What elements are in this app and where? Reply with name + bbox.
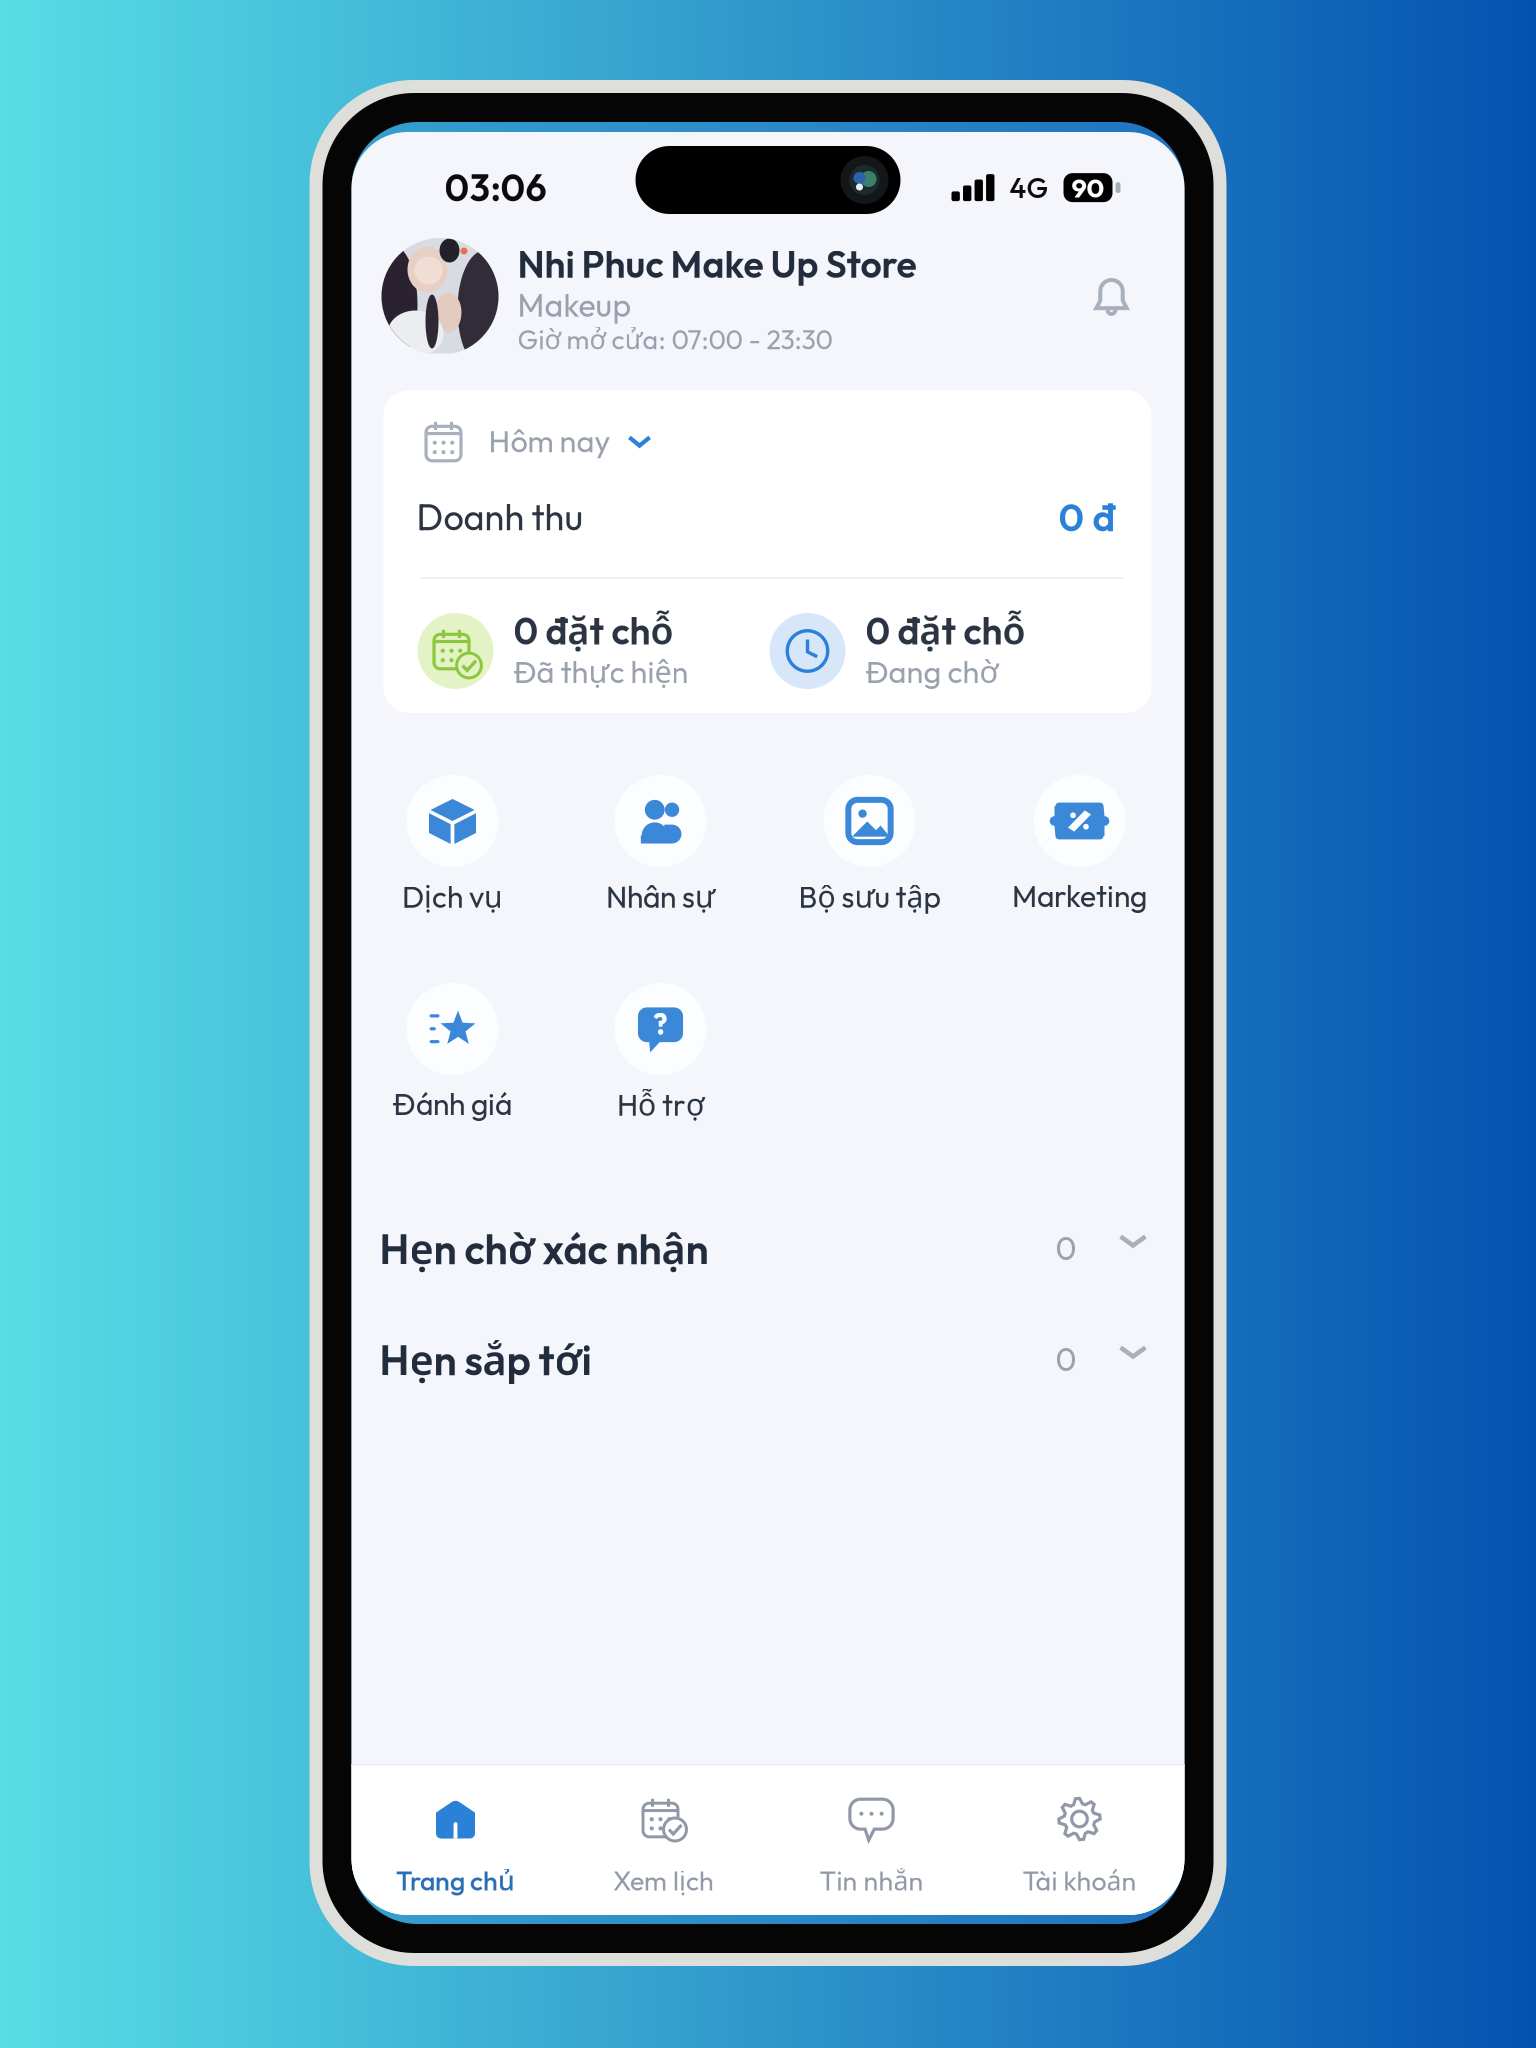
button[interactable]: Marketing [975, 775, 1183, 935]
button[interactable]: Bộ sưu tập [765, 775, 973, 935]
staticText: Giờ mở cửa: 07:00 - 23:30 [517, 321, 832, 357]
button[interactable]: Xem lịch [559, 1764, 767, 1915]
staticText: Đã thực hiện [513, 650, 688, 692]
button[interactable]: Tài khoản [975, 1764, 1183, 1915]
staticText: 0 đặt chỗ [865, 605, 1025, 655]
staticText: Nhi Phuc Make Up Store [517, 240, 916, 287]
staticText: Bộ sưu tập [798, 876, 940, 916]
staticText: Makeup [517, 285, 631, 325]
staticText: 0 [1055, 1339, 1076, 1379]
staticText: ? [653, 1005, 668, 1042]
button[interactable]: Dịch vụ [348, 775, 556, 935]
staticText: Dịch vụ [402, 876, 503, 916]
staticText: Tin nhắn [819, 1862, 923, 1898]
button[interactable]: Đánh giá [348, 983, 556, 1143]
staticText: Hỗ trợ [617, 1084, 704, 1124]
staticText: Marketing [1012, 877, 1147, 915]
staticText: Hôm nay [488, 422, 610, 460]
staticText: Đánh giá [393, 1085, 512, 1123]
staticText: 90 [1071, 171, 1104, 204]
staticText: Xem lịch [613, 1862, 714, 1898]
staticText: Doanh thu [416, 494, 583, 540]
button[interactable]: Trang chủ [351, 1764, 559, 1915]
staticText: 0 đặt chỗ [513, 605, 673, 655]
button[interactable]: Tin nhắn [767, 1764, 975, 1915]
staticText: Nhân sự [606, 876, 715, 916]
staticText: Tài khoản [1022, 1862, 1136, 1898]
staticText: 0 [1055, 1228, 1076, 1268]
staticText: 03:06 [444, 164, 546, 211]
staticText: 4G [1009, 170, 1048, 205]
staticText: 0 đ [1058, 493, 1115, 541]
staticText: Hẹn chờ xác nhận [379, 1220, 708, 1276]
button[interactable]: Hẹn chờ xác nhận [351, 1208, 1184, 1274]
button[interactable]: Notifications [1068, 251, 1154, 337]
staticText: Đang chờ [865, 650, 998, 692]
button[interactable]: Nhân sự [556, 775, 764, 935]
staticText: Hẹn sắp tới [379, 1331, 591, 1387]
button[interactable]: ? [556, 983, 764, 1143]
staticText: Trang chủ [396, 1862, 515, 1898]
button[interactable]: Hẹn sắp tới [351, 1319, 1184, 1385]
